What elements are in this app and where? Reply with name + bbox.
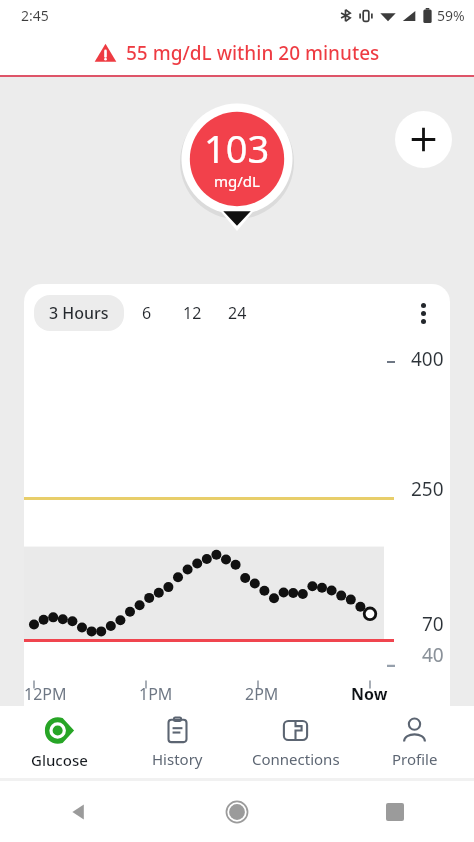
button[interactable]: Back: [0, 781, 158, 842]
button[interactable]: 3 Hours: [34, 295, 124, 331]
staticText: Now: [351, 683, 388, 705]
button[interactable]: Glucose: [0, 710, 118, 775]
staticText: 2:45: [21, 6, 49, 25]
staticText: 12PM: [24, 683, 67, 705]
staticText: 55 mg/dL within 20 minutes: [126, 40, 380, 66]
button[interactable]: Home: [158, 781, 316, 842]
button[interactable]: 12: [170, 295, 215, 331]
button[interactable]: 24: [215, 295, 260, 331]
staticText: 40: [422, 642, 444, 668]
staticText: 103: [204, 122, 270, 174]
staticText: Profile: [392, 749, 438, 769]
staticText: 59%: [437, 6, 465, 25]
button[interactable]: 103: [180, 102, 294, 216]
staticText: 24: [228, 302, 247, 324]
staticText: 70: [422, 611, 444, 637]
staticText: Glucose: [31, 750, 88, 770]
staticText: 2PM: [245, 683, 279, 705]
button[interactable]: More options: [404, 294, 442, 332]
staticText: 250: [411, 476, 444, 502]
staticText: 400: [411, 346, 444, 372]
staticText: 3 Hours: [49, 302, 109, 324]
button[interactable]: History: [118, 711, 236, 774]
staticText: Connections: [252, 749, 340, 769]
staticText: 1PM: [139, 683, 173, 705]
staticText: History: [152, 749, 203, 769]
button[interactable]: Profile: [355, 711, 474, 774]
staticText: mg/dL: [214, 171, 260, 191]
button[interactable]: 55 mg/dL within 20 minutes: [0, 30, 474, 75]
button[interactable]: Connections: [236, 711, 355, 774]
staticText: 6: [142, 302, 152, 324]
button[interactable]: Recents: [316, 781, 474, 842]
button[interactable]: 6: [124, 295, 170, 331]
staticText: 12: [183, 302, 202, 324]
button[interactable]: Add entry: [395, 111, 452, 168]
